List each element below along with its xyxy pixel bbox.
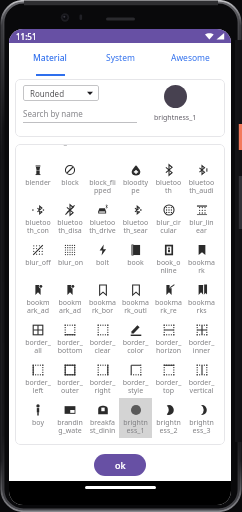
staticText: ok	[115, 459, 126, 471]
staticText: blur_on	[58, 258, 83, 268]
staticText: System	[106, 52, 135, 64]
button[interactable]: bloodtype	[119, 158, 152, 198]
staticText: border_outer	[57, 378, 83, 395]
staticText: bookmark_re	[155, 298, 182, 315]
button[interactable]: border_bottom	[54, 318, 86, 358]
staticText: bloodtype	[122, 178, 149, 195]
button[interactable]: border_inner	[185, 318, 218, 358]
button[interactable]: bookmark_add	[54, 278, 86, 318]
button[interactable]: border_right	[86, 358, 119, 398]
button[interactable]: ok	[94, 454, 146, 476]
button[interactable]: border_clear	[86, 318, 119, 358]
button[interactable]: border_top	[152, 358, 185, 398]
staticText: bluetooth_disa	[57, 218, 83, 235]
button[interactable]: brightness_3	[185, 398, 218, 438]
button[interactable]	[185, 144, 218, 158]
button[interactable]: bookmark	[185, 238, 218, 278]
staticText: bookmark_bor	[89, 298, 116, 315]
button[interactable]: bookmark_outl	[119, 278, 152, 318]
staticText: Material	[33, 52, 67, 64]
button[interactable]: brightness_2	[152, 398, 185, 438]
button[interactable]: book_online	[152, 238, 185, 278]
staticText: bookmark_outl	[122, 298, 149, 315]
staticText: Awesome	[171, 52, 210, 64]
staticText: book	[127, 258, 144, 268]
staticText: boy	[32, 418, 44, 428]
button[interactable]: breakfast_dinin	[86, 398, 119, 438]
staticText: block	[61, 178, 79, 188]
button[interactable]: bluetooth_disa	[54, 198, 86, 238]
button[interactable]: blinds	[152, 144, 185, 158]
staticText: s	[36, 144, 40, 148]
button[interactable]: brightness_1	[119, 398, 152, 438]
staticText: brightness_1	[122, 418, 149, 435]
staticText: bluetooth_sear	[122, 218, 149, 235]
button[interactable]	[119, 144, 152, 158]
button[interactable]: block_flipped	[86, 158, 119, 198]
button[interactable]: book	[119, 238, 152, 278]
button[interactable]: border_all	[22, 318, 54, 358]
button[interactable]: border_style	[119, 358, 152, 398]
staticText: border_all	[25, 338, 51, 355]
button[interactable]: bookmark_bor	[86, 278, 119, 318]
button[interactable]: System	[85, 43, 155, 76]
staticText: bluetooth_drive	[89, 218, 116, 235]
button[interactable]: branding_water	[54, 398, 86, 438]
staticText: border_left	[25, 378, 51, 395]
staticText: bookmarks	[188, 298, 215, 315]
button[interactable]: blender	[22, 158, 54, 198]
staticText: border_inner	[188, 338, 215, 355]
button[interactable]: ds	[86, 144, 119, 158]
staticText: blender	[25, 178, 51, 188]
staticText: blur_linear	[188, 218, 215, 235]
staticText: border_style	[122, 378, 149, 395]
staticText: border_horizon	[155, 338, 182, 355]
staticText: s_clos	[60, 144, 80, 148]
staticText: border_bottom	[57, 338, 83, 355]
button[interactable]: bluetooth_audi	[185, 158, 218, 198]
staticText: ds	[99, 144, 107, 148]
button[interactable]: border_color	[119, 318, 152, 358]
button[interactable]: s	[22, 144, 54, 158]
button[interactable]: bookmark_add	[22, 278, 54, 318]
staticText: brightness_1	[154, 113, 197, 123]
button[interactable]: Awesome	[155, 43, 225, 76]
button[interactable]: border_left	[22, 358, 54, 398]
button[interactable]: border_horizon	[152, 318, 185, 358]
button[interactable]: blur_linear	[185, 198, 218, 238]
button[interactable]: Material	[15, 43, 85, 76]
staticText: bluetooth	[155, 178, 182, 195]
button[interactable]: bluetooth_conn	[22, 198, 54, 238]
button[interactable]: bluetooth	[152, 158, 185, 198]
staticText: Search by name	[23, 108, 83, 119]
button[interactable]: bookmarks	[185, 278, 218, 318]
button[interactable]: bluetooth_drive	[86, 198, 119, 238]
button[interactable]: bluetooth_sear	[119, 198, 152, 238]
staticText: brightness_3	[188, 418, 215, 435]
button[interactable]: blur_off	[22, 238, 54, 278]
staticText: book_online	[155, 258, 182, 275]
button[interactable]: boy	[22, 398, 54, 438]
staticText: brightness_2	[155, 418, 182, 435]
staticText: bookmark_add	[57, 298, 83, 315]
button[interactable]: block	[54, 158, 86, 198]
staticText: border_color	[122, 338, 149, 355]
staticText: blur_off	[25, 258, 51, 268]
staticText: blinds	[159, 144, 179, 148]
staticText: Rounded	[30, 88, 65, 99]
staticText: 11:51	[16, 31, 37, 42]
staticText: border_right	[89, 378, 116, 395]
button[interactable]: bookmark_re	[152, 278, 185, 318]
staticText: bluetooth_conn	[25, 218, 51, 235]
button[interactable]: bolt	[86, 238, 119, 278]
button[interactable]: blur_on	[54, 238, 86, 278]
staticText: branding_water	[57, 418, 83, 435]
button[interactable]: Rounded	[23, 85, 99, 101]
staticText: bookmark_add	[25, 298, 51, 315]
staticText: bolt	[96, 258, 109, 268]
button[interactable]: border_outer	[54, 358, 86, 398]
button[interactable]: border_vertical	[185, 358, 218, 398]
button[interactable]: blur_circular	[152, 198, 185, 238]
button[interactable]: s_clos	[54, 144, 86, 158]
staticText: blur_circular	[155, 218, 182, 235]
